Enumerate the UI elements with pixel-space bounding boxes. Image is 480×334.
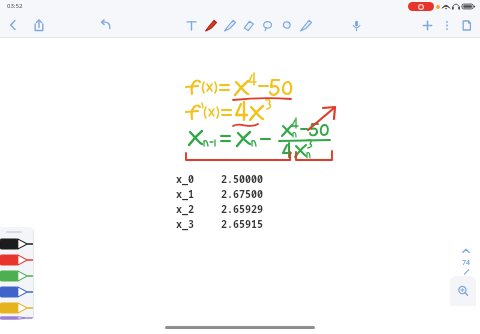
button[interactable]: Black pen	[0, 236, 34, 252]
staticText: 03:52	[7, 2, 23, 10]
button[interactable]: Previous page	[459, 244, 473, 258]
button[interactable]: Zoom	[450, 276, 476, 306]
staticText: x_2	[176, 202, 194, 216]
staticText: 74	[462, 258, 471, 268]
button[interactable]: Purple pen	[0, 316, 34, 320]
staticText: 2.65929	[221, 202, 263, 216]
button[interactable]: Highlighter	[298, 18, 313, 33]
button[interactable]: Pen	[222, 18, 237, 33]
button[interactable]: Green pen	[0, 268, 34, 284]
button[interactable]: Yellow pen	[0, 300, 34, 316]
button[interactable]: Red pen (selected)	[203, 18, 218, 33]
staticText: 2.67500	[221, 187, 263, 201]
staticText: 2.65915	[221, 217, 263, 231]
button[interactable]: More options	[442, 18, 452, 33]
button[interactable]: Back	[5, 17, 21, 33]
button[interactable]: Record audio	[349, 18, 364, 33]
staticText: 2.50000	[221, 172, 263, 186]
button[interactable]: Red pen	[0, 252, 34, 268]
staticText: x_1	[176, 187, 194, 201]
button[interactable]: Eraser	[241, 18, 256, 33]
button[interactable]: Lasso select	[260, 18, 275, 33]
staticText: x_0	[176, 172, 194, 186]
button[interactable]: Text tool	[184, 18, 199, 33]
button[interactable]: Shape tool	[279, 18, 294, 33]
button[interactable]: Blue pen	[0, 284, 34, 300]
button[interactable]: Undo	[98, 17, 114, 33]
button[interactable]: Add page	[420, 18, 435, 33]
button[interactable]: Next page	[459, 286, 473, 300]
button[interactable]: Pages	[459, 18, 474, 33]
button[interactable]: Share	[31, 17, 47, 33]
staticText: x_3	[176, 217, 194, 231]
